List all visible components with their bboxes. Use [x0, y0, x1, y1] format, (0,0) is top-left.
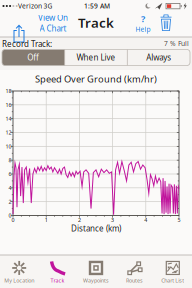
staticText: Chart List: [161, 277, 184, 284]
staticText: Record Track:: [2, 38, 52, 49]
staticText: 10: [5, 143, 11, 150]
staticText: 0: [11, 216, 14, 224]
staticText: ?: [141, 12, 145, 25]
button[interactable]: View On: [38, 12, 68, 34]
button[interactable]: Always: [127, 49, 190, 65]
button[interactable]: Routes: [115, 256, 154, 288]
staticText: 14: [5, 115, 11, 122]
staticText: Track: [78, 14, 114, 31]
staticText: 2: [8, 198, 11, 205]
staticText: 18: [5, 87, 11, 95]
staticText: My Location: [4, 277, 34, 284]
button[interactable]: Track: [38, 256, 77, 288]
button[interactable]: When Live: [65, 49, 127, 65]
staticText: 1:59 AM: [84, 2, 110, 10]
button[interactable]: Waypoints: [77, 256, 115, 288]
staticText: Waypoints: [83, 277, 109, 284]
staticText: Track: [51, 277, 65, 284]
button[interactable]: Off: [2, 49, 65, 65]
staticText: 0: [8, 212, 11, 219]
staticText: 4: [8, 184, 11, 191]
staticText: A Chart: [39, 23, 66, 34]
staticText: 6: [8, 170, 11, 178]
staticText: View On: [38, 12, 68, 23]
staticText: 1: [45, 216, 48, 224]
staticText: Distance (km): [71, 223, 121, 234]
staticText: 7 % Full: [164, 39, 189, 48]
staticText: Speed Over Ground (km/hr): [35, 73, 157, 85]
staticText: Always: [146, 52, 171, 63]
staticText: Verizon: [18, 2, 42, 10]
button[interactable]: Chart List: [154, 256, 192, 288]
button[interactable]: ?: [135, 12, 150, 34]
staticText: 8: [8, 157, 11, 164]
staticText: When Live: [76, 52, 115, 63]
staticText: 5: [177, 216, 180, 224]
staticText: 2: [78, 216, 81, 224]
staticText: 3G: [43, 2, 52, 10]
button[interactable]: Delete track: [159, 13, 172, 32]
staticText: 16: [5, 101, 11, 108]
button[interactable]: My Location: [0, 256, 38, 288]
staticText: Help: [135, 25, 150, 34]
button[interactable]: Share: [4, 11, 24, 33]
staticText: 12: [5, 129, 11, 136]
staticText: Off: [27, 52, 39, 63]
staticText: Routes: [126, 277, 143, 284]
staticText: 3: [111, 216, 114, 224]
staticText: 4: [144, 216, 147, 224]
